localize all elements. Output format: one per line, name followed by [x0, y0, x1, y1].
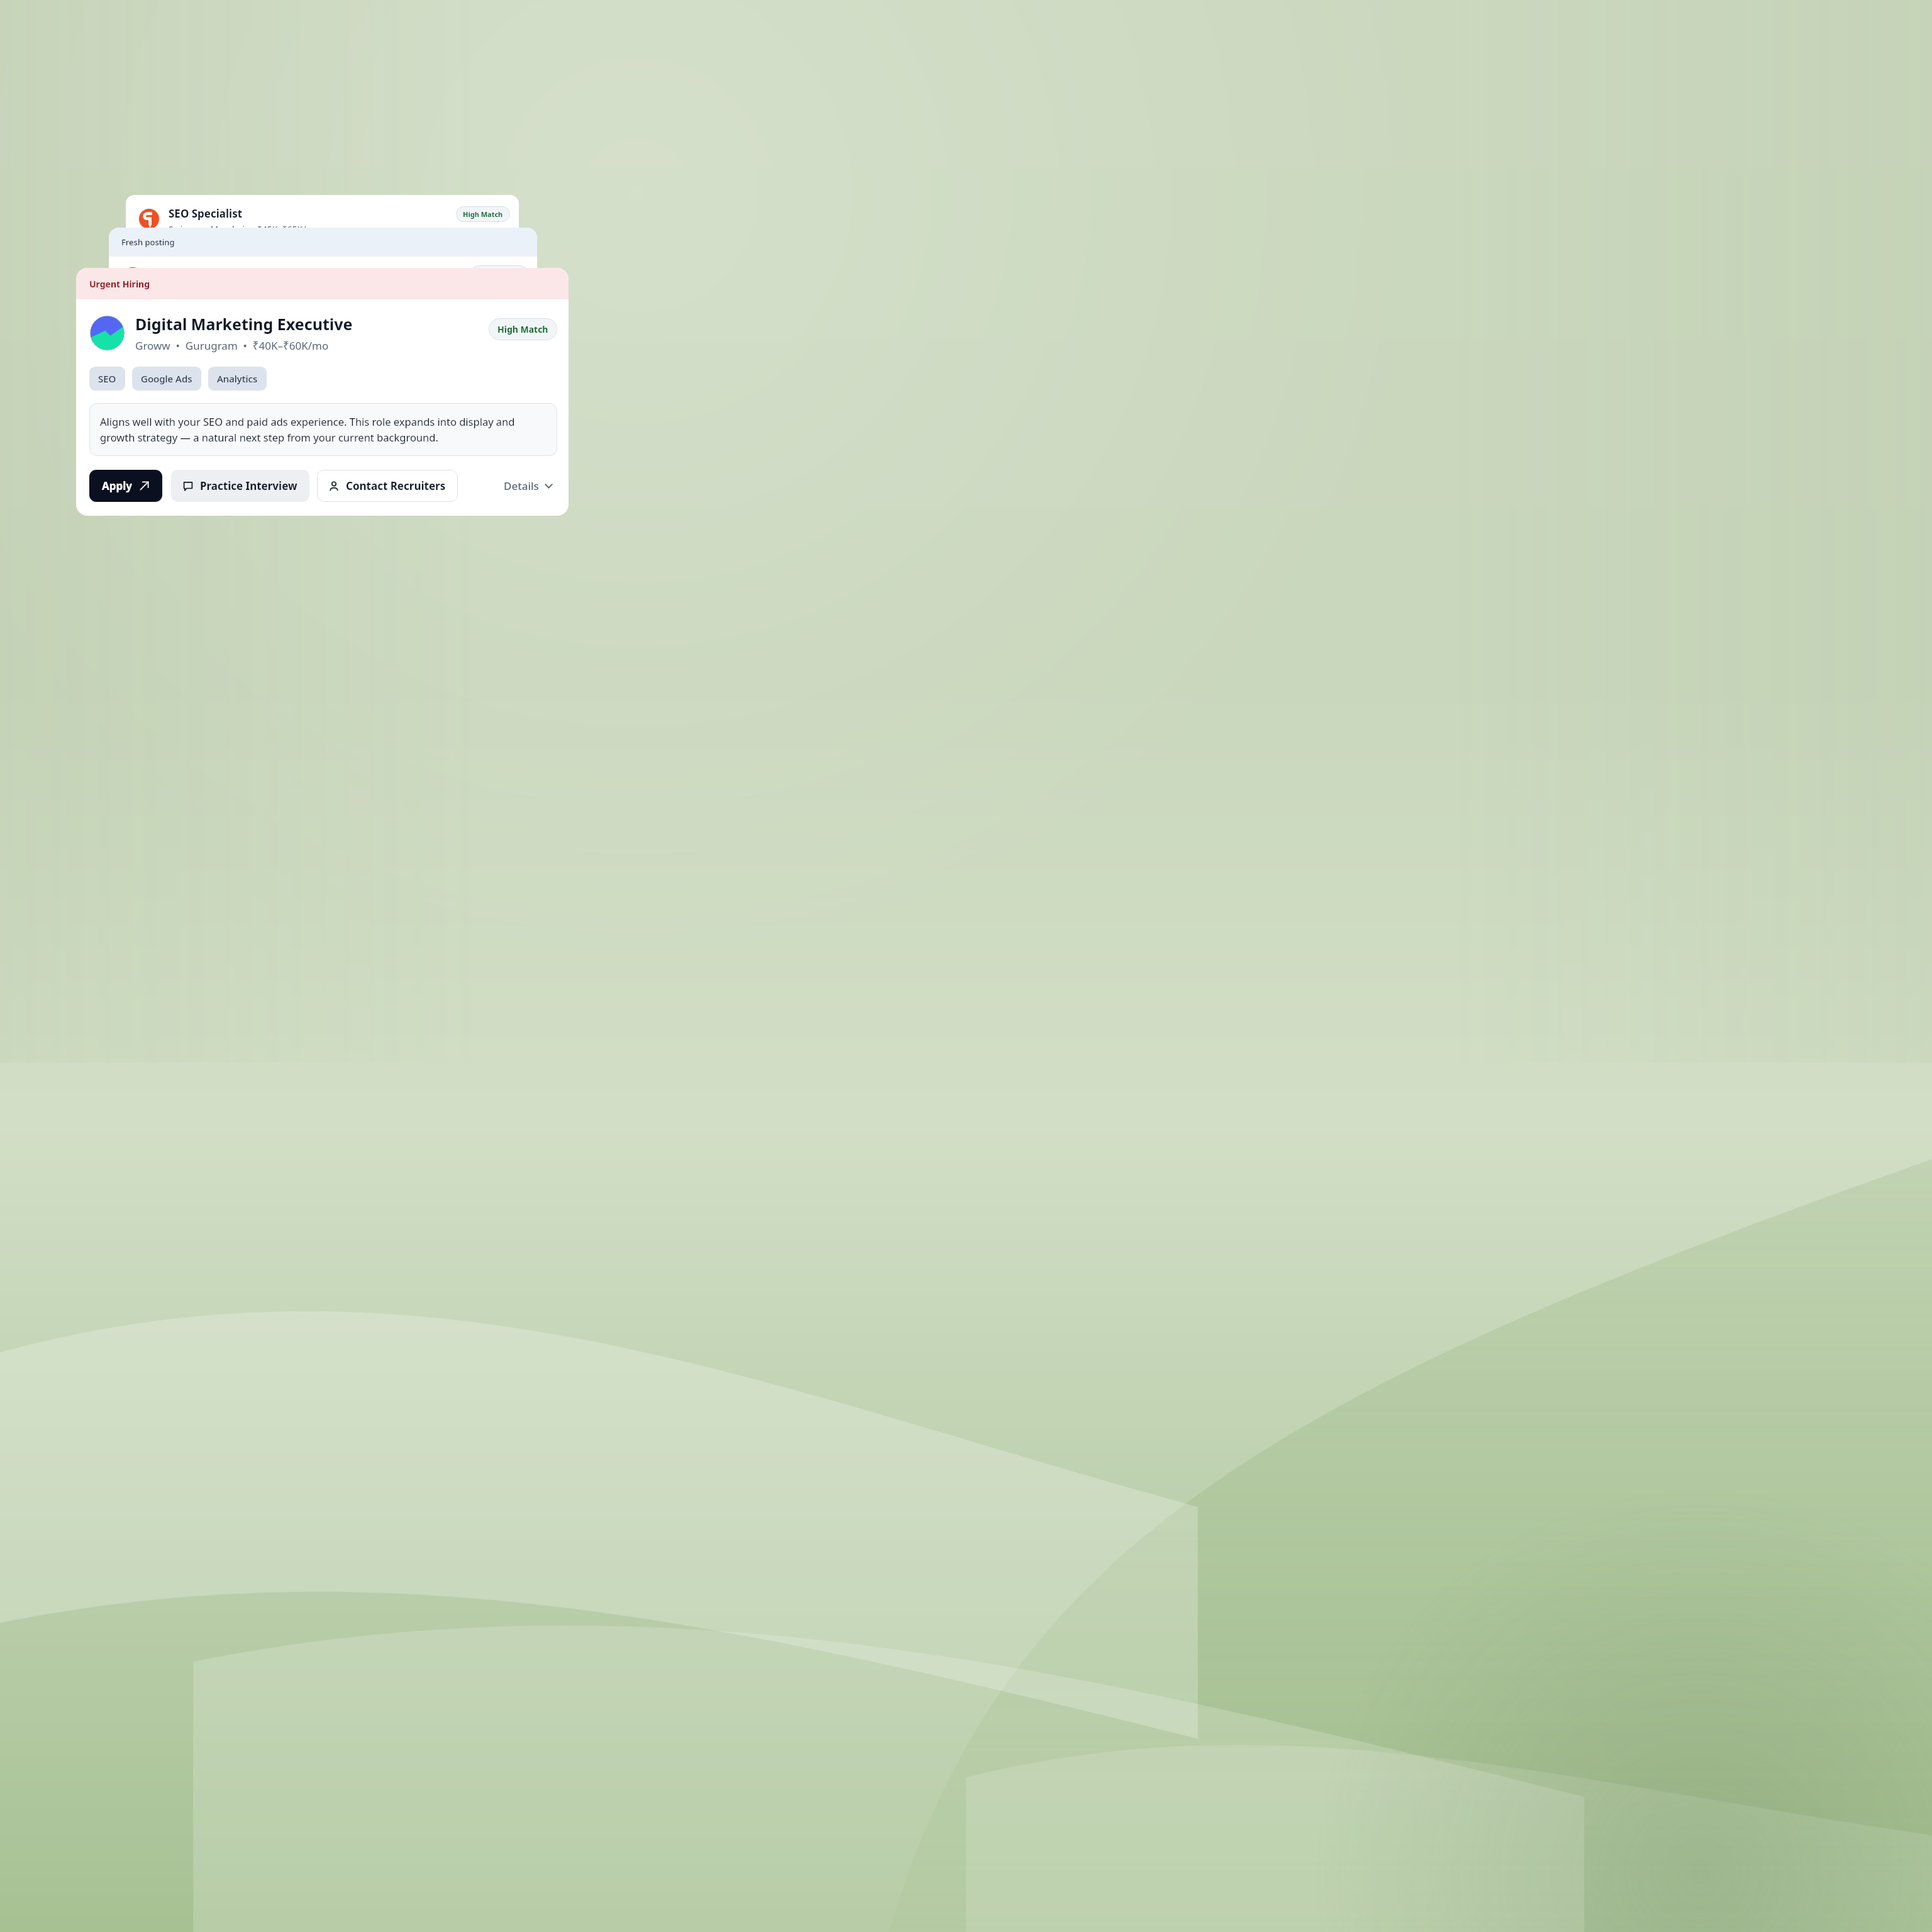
- staticText: SEO Specialist: [169, 206, 243, 221]
- button[interactable]: High Match: [489, 318, 557, 340]
- staticText: Digital Marketing Executive: [135, 313, 353, 335]
- button[interactable]: Google Ads: [132, 367, 201, 391]
- button[interactable]: Urgent Hiring: [76, 268, 569, 516]
- other: Expand details: [544, 481, 553, 491]
- staticText: Contact Recruiters: [346, 479, 446, 493]
- button[interactable]: Fresh posting: [109, 228, 537, 328]
- button[interactable]: High Match: [470, 265, 528, 283]
- button[interactable]: Contact recruiters: [317, 470, 458, 502]
- other: Open: [139, 480, 150, 491]
- staticText: High Match: [463, 209, 503, 219]
- button[interactable]: Apply: [89, 470, 162, 502]
- staticText: Groww • Gurugram • ₹40K–₹60K/mo: [135, 338, 329, 353]
- button[interactable]: Details: [500, 474, 557, 498]
- staticText: High Match: [497, 323, 548, 335]
- staticText: Swiggy • Mumbai • ₹45K–₹65K/mo: [169, 223, 319, 235]
- staticText: SEO: [98, 372, 116, 385]
- button[interactable]: High Match: [456, 206, 510, 222]
- button[interactable]: SEO Specialist: [126, 195, 519, 270]
- staticText: Details: [504, 479, 539, 493]
- staticText: Content Strategist: [153, 265, 263, 282]
- staticText: Practice Interview: [200, 479, 297, 493]
- staticText: Fresh posting: [121, 236, 175, 248]
- staticText: Aligns well with your SEO and paid ads e…: [100, 414, 547, 445]
- staticText: Apply: [102, 479, 133, 493]
- other: Contact recruiters: [329, 481, 339, 491]
- button[interactable]: Analytics: [208, 367, 267, 391]
- button[interactable]: Practice interview: [171, 470, 309, 502]
- button[interactable]: SEO: [89, 367, 125, 391]
- staticText: Urgent Hiring: [89, 278, 150, 290]
- staticText: Analytics: [217, 372, 258, 385]
- staticText: Google Ads: [141, 372, 192, 385]
- other: Practice interview: [183, 481, 193, 491]
